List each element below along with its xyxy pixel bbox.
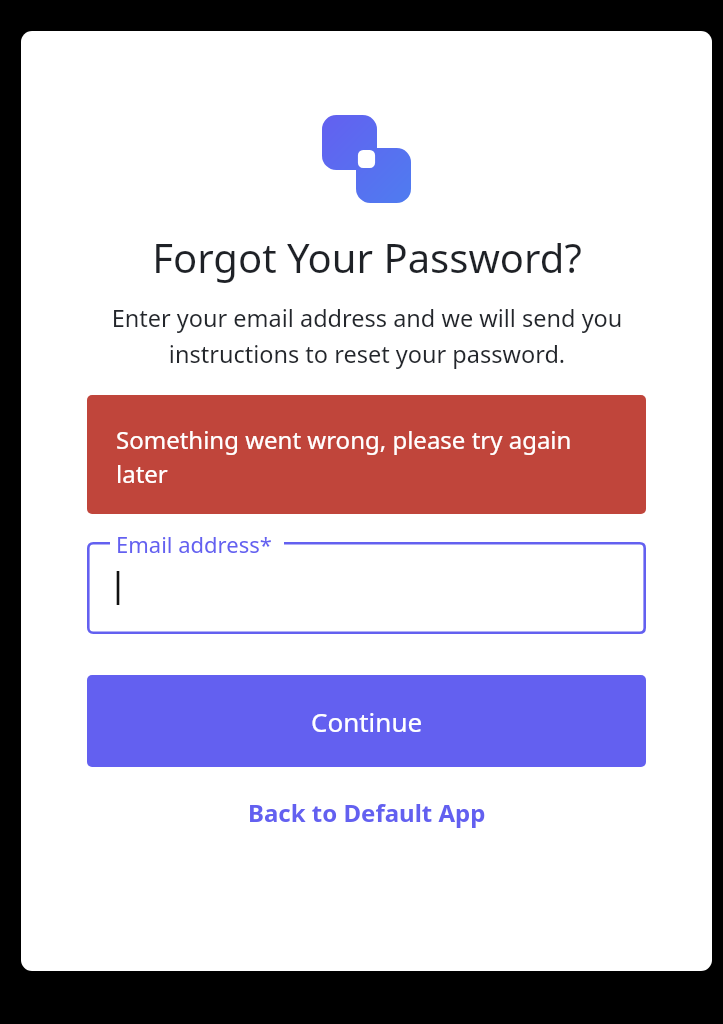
button[interactable]: Email address [87, 542, 646, 634]
staticText: Enter your email address and we will sen… [97, 302, 637, 370]
staticText: Something went wrong, please try again l… [116, 423, 612, 491]
button[interactable]: Back to Default App [238, 790, 496, 835]
staticText: Continue [311, 704, 423, 739]
button[interactable]: Continue [87, 675, 646, 767]
staticText: Email address* [116, 529, 272, 559]
staticText: Forgot Your Password? [152, 230, 582, 284]
staticText: Back to Default App [248, 796, 486, 829]
other: App logo [322, 115, 411, 203]
